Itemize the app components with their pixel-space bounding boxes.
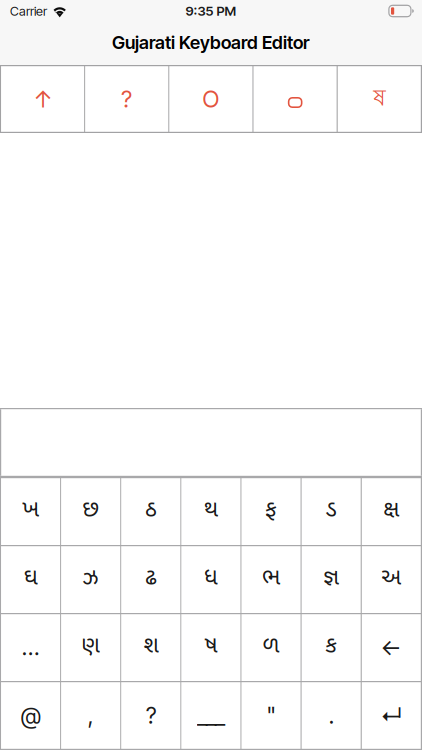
button[interactable]: Key ___ [181, 681, 240, 750]
staticText: ষ [373, 83, 385, 115]
button[interactable]: Key , [61, 681, 120, 750]
button[interactable]: Key થ [181, 477, 240, 545]
staticText: ↵ [381, 702, 402, 729]
staticText: ઝ [83, 564, 99, 594]
staticText: . [329, 702, 334, 729]
button[interactable]: Key જ્ઞ [302, 545, 361, 613]
staticText: @ [21, 702, 41, 729]
button[interactable]: Key " [242, 681, 301, 750]
staticText: Gujarati Keyboard Editor [112, 31, 310, 53]
button[interactable]: Key ઝ [61, 545, 120, 613]
button[interactable]: Key ળ [242, 613, 301, 681]
staticText: Carrier [10, 3, 47, 19]
button[interactable]: Key @ [1, 681, 60, 750]
button[interactable]: Key ઢ [121, 545, 180, 613]
button[interactable]: Key ધ [181, 545, 240, 613]
staticText: છ [82, 496, 99, 526]
staticText: ઠ [145, 496, 157, 526]
staticText: ક્ષ [383, 496, 399, 526]
staticText: અ [381, 564, 401, 594]
button[interactable]: Key ← [362, 613, 421, 681]
staticText: થ [204, 496, 218, 526]
staticText: 9:35 PM [185, 3, 236, 19]
button[interactable]: Key ણ [61, 613, 120, 681]
button[interactable]: Key ખ [1, 477, 60, 545]
button[interactable]: Key ફ [242, 477, 301, 545]
staticText: શ [143, 632, 158, 662]
staticText: ક [325, 632, 337, 662]
staticText: " [267, 702, 276, 729]
button[interactable]: Key . [302, 681, 361, 750]
button[interactable]: Key ઠ [121, 477, 180, 545]
staticText: , [88, 702, 94, 729]
staticText: ← [381, 633, 402, 661]
staticText: ળ [263, 632, 280, 662]
button[interactable]: Key છ [61, 477, 120, 545]
staticText: ઘ [24, 564, 38, 594]
button[interactable]: Key ભ [242, 545, 301, 613]
button[interactable]: Candidate ? [85, 65, 168, 133]
button[interactable]: Key ↵ [362, 681, 421, 750]
button[interactable]: Key … [1, 613, 60, 681]
button[interactable]: Key ઘ [1, 545, 60, 613]
button[interactable]: Candidate ↑ [1, 65, 84, 133]
staticText: ? [121, 85, 132, 113]
staticText: ભ [262, 564, 280, 594]
button[interactable]: Text entry field [0, 408, 422, 477]
button[interactable]: Key ક [302, 613, 361, 681]
staticText: ધ [204, 564, 218, 594]
button[interactable]: Candidate ষ [338, 65, 421, 133]
button[interactable]: Key શ [121, 613, 180, 681]
staticText: ણ [81, 632, 100, 662]
button[interactable]: Candidate O [169, 65, 252, 133]
button[interactable]: Key ડ [302, 477, 361, 545]
staticText: ખ [22, 496, 39, 526]
button[interactable]: Candidate, box [254, 65, 337, 133]
staticText: ↑ [32, 85, 53, 113]
staticText: ઢ [145, 564, 157, 594]
button[interactable]: Key ષ [181, 613, 240, 681]
staticText: જ્ઞ [323, 564, 339, 594]
button[interactable]: Key ? [121, 681, 180, 750]
staticText: ___ [197, 702, 224, 729]
button[interactable]: Key અ [362, 545, 421, 613]
staticText: … [22, 633, 40, 661]
button[interactable]: Key ક્ષ [362, 477, 421, 545]
staticText: ષ [204, 632, 217, 662]
staticText: O [202, 85, 219, 113]
staticText: ડ [326, 496, 337, 526]
staticText: ફ [265, 496, 277, 526]
staticText: ? [146, 702, 156, 729]
